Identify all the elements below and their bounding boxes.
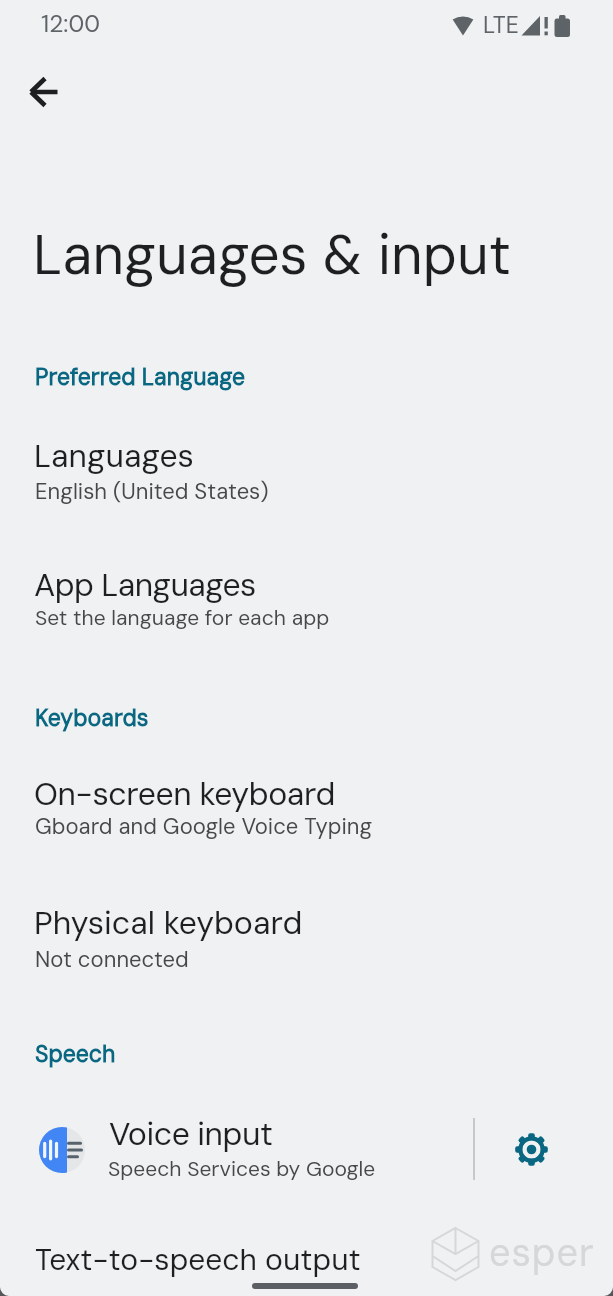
button[interactable]: Languages xyxy=(0,424,613,536)
staticText: Languages & input xyxy=(33,219,512,291)
button[interactable]: Physical keyboard xyxy=(0,890,613,1002)
staticText: Text-to-speech output xyxy=(35,1240,361,1279)
button[interactable] xyxy=(507,1125,556,1174)
staticText: Languages xyxy=(34,435,194,477)
staticText: On-screen keyboard xyxy=(34,773,336,815)
staticText: Gboard and Google Voice Typing xyxy=(35,812,373,841)
staticText: Set the language for each app xyxy=(35,604,330,631)
staticText: Physical keyboard xyxy=(34,902,303,944)
staticText: English (United States) xyxy=(35,477,269,506)
button[interactable]: Voice input xyxy=(0,1100,613,1200)
staticText: esper xyxy=(489,1228,595,1277)
staticText: Not connected xyxy=(35,945,189,974)
button[interactable] xyxy=(24,72,64,112)
staticText: LTE xyxy=(483,10,519,40)
button[interactable]: Text-to-speech output xyxy=(0,1228,613,1296)
staticText: Voice input xyxy=(109,1113,273,1155)
staticText: App Languages xyxy=(34,564,256,606)
button[interactable]: On-screen keyboard xyxy=(0,758,613,870)
staticText: 12:00 xyxy=(41,8,100,39)
staticText: Speech Services by Google xyxy=(108,1155,376,1182)
staticText: Speech xyxy=(35,1039,116,1069)
button[interactable]: App Languages xyxy=(0,552,613,664)
staticText: Keyboards xyxy=(35,703,149,733)
staticText: Preferred Language xyxy=(35,362,245,392)
